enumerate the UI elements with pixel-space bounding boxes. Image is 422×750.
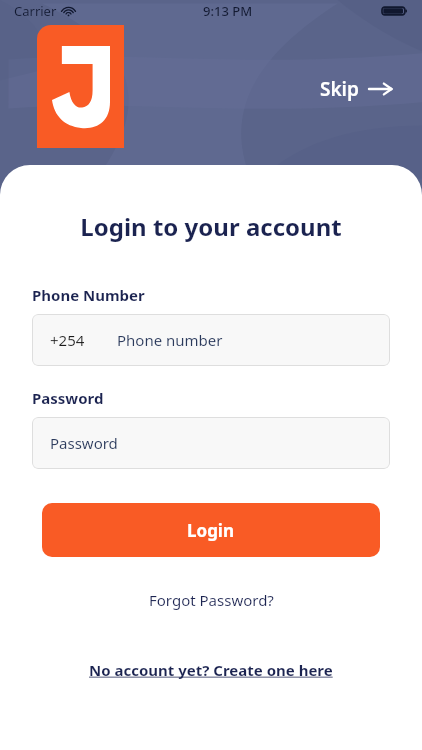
- staticText: Carrier: [14, 2, 57, 20]
- staticText: Password: [32, 388, 104, 408]
- button[interactable]: Login: [42, 503, 380, 557]
- staticText: +254: [50, 330, 85, 350]
- button[interactable]: No account yet? Create one here: [75, 654, 347, 686]
- button[interactable]: +254: [32, 314, 390, 366]
- button[interactable]: Skip: [310, 70, 403, 108]
- staticText: Login: [187, 519, 235, 542]
- staticText: Phone Number: [32, 285, 145, 305]
- button[interactable]: Password: [32, 417, 390, 469]
- staticText: Phone number: [117, 330, 223, 350]
- staticText: Login to your account: [0, 210, 422, 243]
- staticText: Skip: [320, 76, 359, 102]
- button[interactable]: Forgot Password?: [135, 584, 288, 616]
- staticText: Password: [50, 433, 118, 453]
- staticText: Forgot Password?: [149, 590, 274, 610]
- staticText: 9:13 PM: [203, 2, 253, 20]
- staticText: No account yet? Create one here: [89, 660, 333, 680]
